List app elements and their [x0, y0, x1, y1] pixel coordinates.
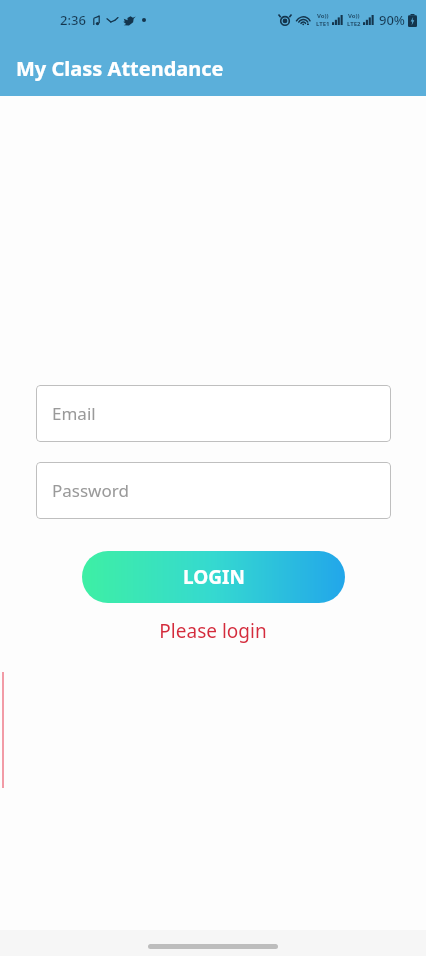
button[interactable]: Email — [36, 385, 391, 442]
staticText: LTE2 — [347, 20, 361, 28]
staticText: Please login — [159, 618, 267, 644]
staticText: Vo)) — [348, 12, 360, 20]
staticText: Email — [52, 402, 96, 425]
staticText: LTE1 — [316, 20, 330, 28]
staticText: Vo)) — [317, 12, 329, 20]
staticText: My Class Attendance — [16, 55, 224, 82]
button[interactable]: LOGIN — [82, 551, 345, 603]
staticText: 2:36 — [60, 11, 86, 29]
staticText: LOGIN — [183, 564, 245, 590]
button[interactable]: Password — [36, 462, 391, 519]
staticText: 90% — [379, 11, 405, 29]
staticText: Password — [52, 479, 129, 502]
